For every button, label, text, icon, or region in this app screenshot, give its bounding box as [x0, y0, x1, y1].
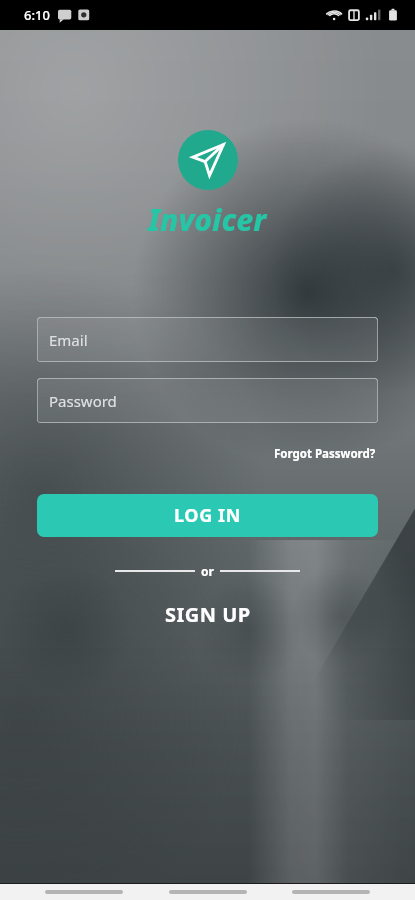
staticText: 6:10 — [24, 6, 50, 24]
staticText: Email — [49, 330, 88, 350]
button[interactable]: LOG IN — [37, 494, 378, 537]
button[interactable]: Back — [45, 885, 123, 899]
button[interactable]: Recents — [292, 885, 370, 899]
staticText: Invoicer — [148, 199, 267, 240]
staticText: Forgot Password? — [274, 446, 376, 462]
button[interactable]: Home — [169, 885, 247, 899]
staticText: Password — [49, 391, 117, 411]
button[interactable]: SIGN UP — [155, 598, 261, 631]
staticText: or — [201, 563, 214, 579]
button[interactable]: Forgot Password? — [272, 444, 378, 464]
button[interactable]: Password — [37, 378, 378, 423]
button[interactable]: Email — [37, 317, 378, 362]
staticText: SIGN UP — [165, 601, 251, 628]
staticText: LOG IN — [174, 503, 241, 528]
